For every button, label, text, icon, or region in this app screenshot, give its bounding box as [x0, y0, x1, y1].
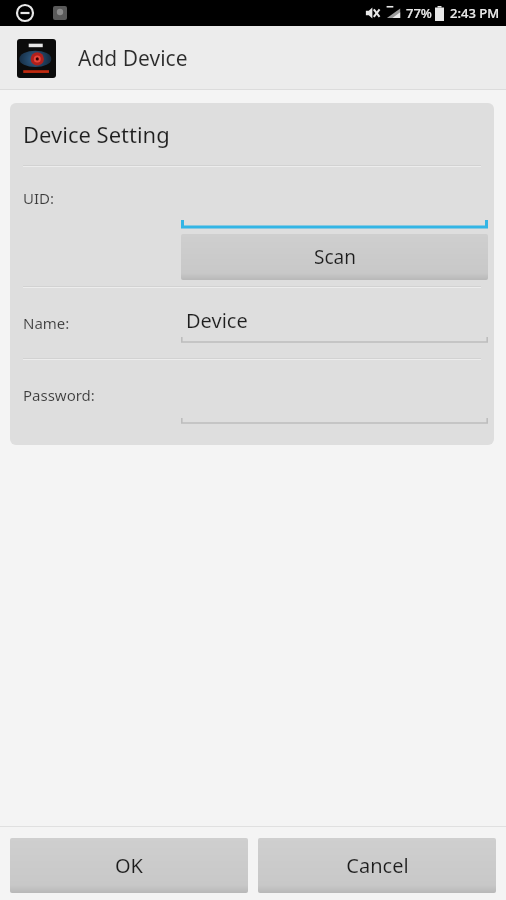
staticText: Scan — [314, 244, 356, 270]
staticText: Device Setting — [23, 119, 170, 149]
staticText: Cancel — [346, 852, 409, 879]
staticText: 77% — [406, 4, 432, 22]
staticText: OK — [115, 852, 143, 879]
button[interactable]: OK — [10, 838, 248, 893]
button[interactable] — [181, 380, 488, 425]
button[interactable]: Cancel — [258, 838, 496, 893]
staticText: Name: — [23, 313, 70, 333]
staticText: UID: — [23, 188, 55, 208]
button[interactable]: Scan — [181, 234, 488, 280]
staticText: 2:43 PM — [450, 4, 500, 22]
button[interactable]: Device — [181, 302, 488, 344]
button[interactable] — [181, 199, 488, 229]
staticText: Device — [186, 307, 248, 334]
staticText: Add Device — [78, 44, 188, 73]
staticText: Password: — [23, 385, 95, 405]
